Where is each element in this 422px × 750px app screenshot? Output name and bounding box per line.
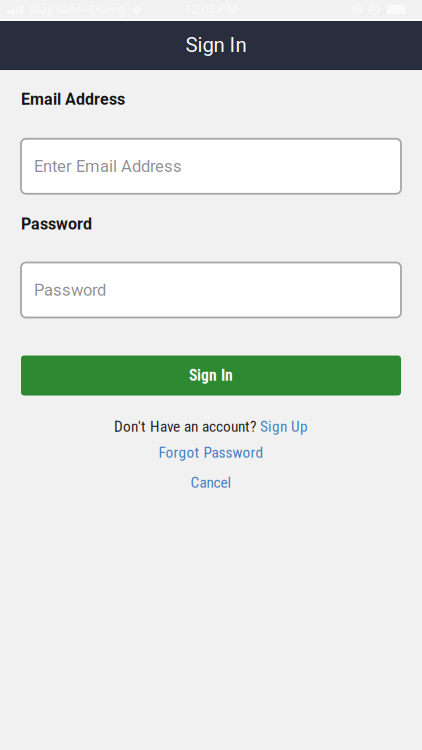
- staticText: Don't Have an account?: [114, 417, 260, 435]
- staticText: Password: [34, 280, 106, 300]
- staticText: Forgot Password: [158, 443, 263, 461]
- button[interactable]: Sign In: [21, 355, 401, 395]
- button[interactable]: Forgot Password: [158, 443, 263, 461]
- staticText: Sign In: [189, 366, 233, 385]
- staticText: Cancel: [190, 473, 231, 491]
- button[interactable]: Sign Up: [260, 417, 308, 435]
- staticText: Password: [21, 215, 92, 234]
- staticText: Sign Up: [260, 417, 308, 435]
- staticText: Sign In: [185, 33, 246, 57]
- staticText: Enter Email Address: [34, 157, 182, 176]
- button[interactable]: Cancel: [190, 473, 231, 491]
- staticText: Email Address: [21, 90, 125, 109]
